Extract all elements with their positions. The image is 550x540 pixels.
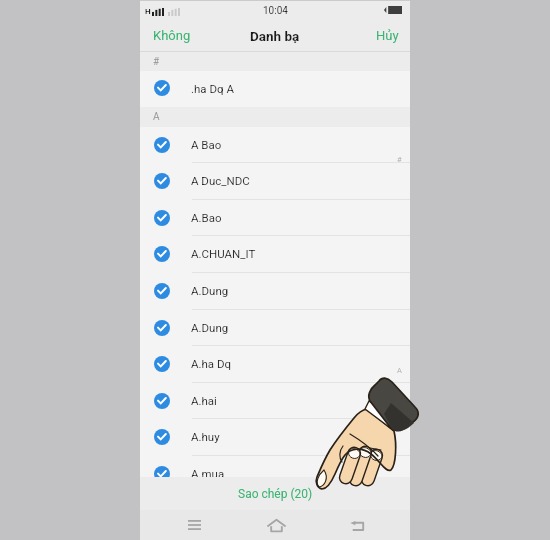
button[interactable]: A.ha Dq: [140, 346, 410, 383]
button[interactable]: .ha Dq A: [140, 71, 410, 107]
button[interactable]: A.Bao: [140, 200, 410, 237]
staticText: Không: [153, 28, 191, 43]
button[interactable]: Menu: [181, 514, 207, 536]
staticText: .ha Dq A: [191, 82, 234, 95]
staticText: #: [397, 155, 402, 164]
staticText: A.Dung: [191, 284, 229, 297]
button[interactable]: Home: [263, 514, 289, 536]
button[interactable]: Back: [344, 515, 370, 537]
button[interactable]: A.Dung: [140, 273, 410, 310]
button[interactable]: A Duc_NDC: [140, 163, 410, 200]
staticText: A Duc_NDC: [191, 174, 250, 187]
button[interactable]: A.CHUAN_IT: [140, 236, 410, 273]
button[interactable]: A.mua: [140, 456, 410, 493]
staticText: H: [145, 7, 151, 16]
button[interactable]: A.Dung: [140, 310, 410, 347]
staticText: 10:04: [263, 5, 288, 17]
button[interactable]: A.hai: [140, 383, 410, 420]
button[interactable]: Không: [140, 24, 201, 47]
button[interactable]: Hủy: [366, 24, 410, 47]
staticText: A.CHUAN_IT: [191, 247, 256, 260]
staticText: A.Bao: [191, 211, 222, 224]
staticText: Hủy: [376, 28, 399, 43]
staticText: A.ha Dq: [191, 357, 232, 370]
button[interactable]: Sao chép (20): [140, 477, 410, 510]
button[interactable]: A.huy: [140, 419, 410, 456]
staticText: Danh bạ: [250, 28, 300, 44]
staticText: A.hai: [191, 394, 217, 407]
staticText: A Bao: [191, 138, 222, 151]
button[interactable]: A Bao: [140, 127, 410, 164]
staticText: A: [397, 366, 402, 375]
staticText: A: [153, 111, 160, 123]
staticText: A.huy: [191, 430, 220, 443]
staticText: #: [153, 56, 160, 68]
staticText: Sao chép (20): [238, 487, 313, 501]
staticText: A.mua: [191, 467, 225, 480]
staticText: A.Dung: [191, 321, 229, 334]
